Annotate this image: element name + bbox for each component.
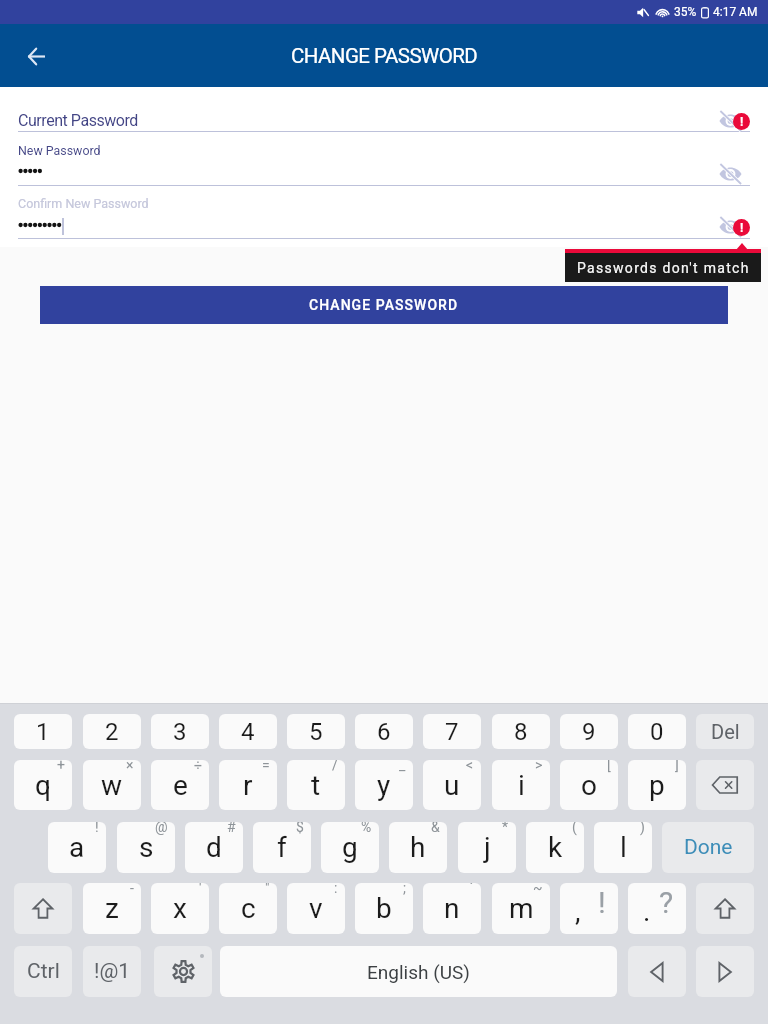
staticText: =	[262, 760, 270, 773]
button[interactable]: 6	[355, 714, 413, 749]
staticText: '	[199, 883, 202, 896]
button[interactable]: 9	[560, 714, 618, 749]
button[interactable]: u	[423, 760, 481, 810]
button[interactable]: 1	[14, 714, 72, 749]
button[interactable]: !@1	[83, 946, 141, 997]
button[interactable]: Toggle password visibility	[706, 150, 754, 198]
button[interactable]: 8	[492, 714, 550, 749]
staticText: Del	[711, 720, 740, 743]
button[interactable]: z	[83, 883, 141, 934]
button[interactable]: 2	[83, 714, 141, 749]
button[interactable]: .	[628, 883, 686, 934]
staticText: >	[535, 760, 543, 773]
staticText: <	[466, 760, 474, 773]
button[interactable]: r	[219, 760, 277, 810]
staticText: u	[444, 769, 460, 802]
staticText: 1	[36, 718, 50, 746]
button[interactable]: 0	[628, 714, 686, 749]
button[interactable]: l	[594, 822, 652, 873]
staticText: ×	[126, 760, 134, 773]
staticText: (	[572, 822, 577, 835]
staticText: d	[206, 831, 222, 864]
staticText: t	[311, 769, 321, 802]
staticText: CHANGE PASSWORD	[309, 297, 459, 313]
button[interactable]: CHANGE PASSWORD	[40, 286, 728, 324]
staticText: 35%	[674, 5, 697, 19]
button[interactable]: c	[219, 883, 277, 934]
button[interactable]: y	[355, 760, 413, 810]
button[interactable]: 7	[423, 714, 481, 749]
button[interactable]: j	[458, 822, 516, 873]
staticText: j	[484, 831, 491, 864]
staticText: k	[548, 831, 563, 864]
button[interactable]: q	[14, 760, 72, 810]
button[interactable]: Toggle password visibility	[706, 203, 754, 251]
button[interactable]: Move right	[696, 946, 754, 997]
button[interactable]: x	[151, 883, 209, 934]
staticText: w	[101, 769, 123, 802]
staticText: c	[241, 892, 256, 925]
button[interactable]: 4	[219, 714, 277, 749]
button[interactable]: w	[83, 760, 141, 810]
button[interactable]: Backspace	[696, 760, 754, 810]
staticText: ,	[575, 895, 581, 928]
button[interactable]: Keyboard settings	[154, 946, 212, 997]
button[interactable]: Back	[12, 32, 60, 80]
staticText: $	[296, 822, 304, 835]
button[interactable]: n	[423, 883, 481, 934]
staticText: o	[581, 769, 597, 802]
button[interactable]: 5	[287, 714, 345, 749]
button[interactable]: s	[117, 822, 175, 873]
button[interactable]: Shift	[14, 883, 72, 934]
staticText: CHANGE PASSWORD	[291, 44, 478, 68]
staticText: l	[620, 831, 627, 864]
button[interactable]: Del	[696, 714, 754, 749]
staticText: ]	[675, 760, 679, 773]
button[interactable]: g	[321, 822, 379, 873]
staticText: English (US)	[367, 961, 470, 983]
button[interactable]: e	[151, 760, 209, 810]
staticText: !	[740, 115, 744, 129]
button[interactable]: ,	[560, 883, 618, 934]
button[interactable]: f	[253, 822, 311, 873]
button[interactable]: Ctrl	[14, 946, 72, 997]
staticText: Passwords don't match	[577, 260, 750, 276]
button[interactable]: Toggle password visibility	[706, 97, 754, 145]
staticText: @	[155, 822, 168, 835]
staticText: Ctrl	[27, 959, 60, 984]
button[interactable]: k	[526, 822, 584, 873]
button[interactable]: h	[389, 822, 447, 873]
button[interactable]: v	[287, 883, 345, 934]
staticText: q	[35, 769, 51, 802]
staticText: s	[139, 831, 154, 864]
staticText: 5	[309, 718, 323, 746]
staticText: ?	[659, 885, 674, 920]
staticText: !@1	[94, 959, 131, 984]
staticText: *	[502, 822, 509, 835]
staticText: Confirm New Password	[18, 196, 149, 211]
staticText: i	[518, 769, 525, 802]
button[interactable]: p	[628, 760, 686, 810]
button[interactable]: Move left	[628, 946, 686, 997]
button[interactable]: t	[287, 760, 345, 810]
staticText: [	[607, 760, 611, 773]
button[interactable]: 3	[151, 714, 209, 749]
button[interactable]: i	[492, 760, 550, 810]
staticText: )	[640, 822, 645, 835]
staticText: r	[243, 769, 253, 802]
staticText: z	[105, 892, 119, 925]
button[interactable]: English (US)	[220, 946, 617, 997]
button[interactable]: b	[355, 883, 413, 934]
button[interactable]: m	[492, 883, 550, 934]
staticText: /	[332, 760, 338, 773]
staticText: !	[740, 221, 744, 235]
button[interactable]: o	[560, 760, 618, 810]
staticText: b	[376, 892, 392, 925]
staticText: 9	[582, 718, 596, 746]
button[interactable]: a	[48, 822, 106, 873]
button[interactable]: Done	[662, 822, 754, 873]
staticText: a	[69, 831, 85, 864]
button[interactable]: d	[185, 822, 243, 873]
button[interactable]: Shift	[696, 883, 754, 934]
staticText: 2	[105, 718, 119, 746]
